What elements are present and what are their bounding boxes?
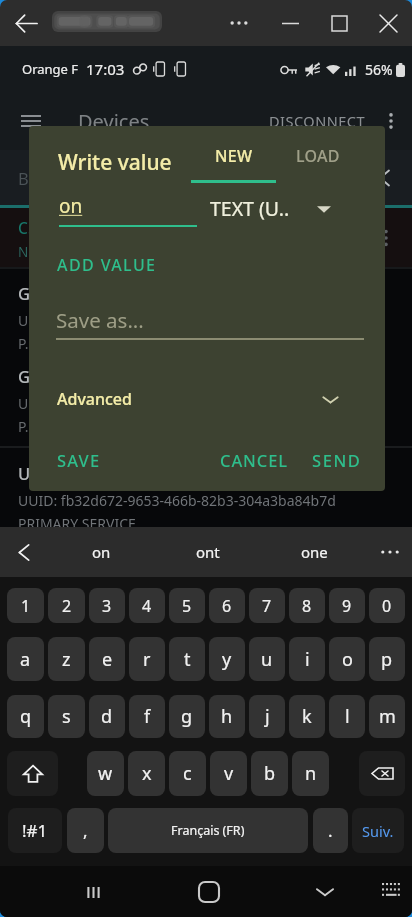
- button[interactable]: Previous suggestions: [0, 527, 48, 577]
- staticText: UUID: fb32d672-9653-466b-82b3-304a3ba84b…: [18, 491, 336, 510]
- button[interactable]: CANCEL: [220, 449, 288, 471]
- button[interactable]: s: [48, 695, 85, 738]
- staticText: 9: [342, 595, 352, 617]
- button[interactable]: f: [129, 695, 165, 738]
- staticText: .: [328, 819, 333, 842]
- button[interactable]: 9: [329, 588, 365, 623]
- button[interactable]: More options: [374, 104, 408, 138]
- button[interactable]: a: [7, 637, 44, 681]
- button[interactable]: Maximize: [317, 1, 361, 45]
- staticText: Save as...: [56, 306, 144, 334]
- button[interactable]: b: [251, 751, 288, 796]
- button[interactable]: w: [87, 751, 124, 796]
- button[interactable]: More options: [217, 1, 261, 45]
- button[interactable]: Français (FR): [108, 808, 308, 853]
- button[interactable]: Advanced: [57, 388, 132, 410]
- staticText: ont: [196, 542, 220, 562]
- staticText: d: [101, 704, 113, 729]
- staticText: C.........: [18, 217, 66, 238]
- button[interactable]: t: [169, 637, 205, 681]
- button[interactable]: G.........: [0, 352, 412, 448]
- button[interactable]: 4: [129, 588, 165, 623]
- staticText: g: [181, 704, 193, 729]
- button[interactable]: Hide keyboard: [368, 869, 412, 915]
- staticText: Write value: [58, 148, 172, 177]
- button[interactable]: c: [169, 751, 206, 796]
- button[interactable]: Close: [366, 1, 410, 45]
- button[interactable]: 6: [209, 588, 245, 623]
- button[interactable]: 7: [249, 588, 285, 623]
- staticText: U.........: [18, 311, 62, 330]
- button[interactable]: Delete: [359, 751, 405, 796]
- button[interactable]: g: [169, 695, 205, 738]
- button[interactable]: Open navigation menu: [13, 103, 49, 139]
- button[interactable]: Shift: [7, 751, 58, 796]
- button[interactable]: y: [209, 637, 245, 681]
- staticText: ADD VALUE: [57, 254, 157, 276]
- staticText: Français (FR): [171, 822, 245, 839]
- button[interactable]: Save as...: [56, 306, 364, 340]
- staticText: w: [98, 761, 113, 786]
- staticText: G.........: [18, 282, 71, 304]
- button[interactable]: r: [129, 637, 165, 681]
- button[interactable]: Recent apps: [70, 869, 116, 915]
- staticText: 3: [102, 595, 112, 617]
- button[interactable]: ,: [67, 808, 104, 853]
- button[interactable]: G.........: [0, 269, 412, 352]
- button[interactable]: 2: [48, 588, 85, 623]
- button[interactable]: v: [210, 751, 247, 796]
- button[interactable]: n: [292, 751, 329, 796]
- button[interactable]: on: [48, 527, 154, 577]
- staticText: !#1: [22, 819, 48, 842]
- button[interactable]: l: [329, 695, 365, 738]
- button[interactable]: LOAD: [278, 145, 358, 167]
- button[interactable]: k: [289, 695, 325, 738]
- staticText: P.........: [18, 417, 59, 436]
- staticText: l: [345, 704, 350, 729]
- button[interactable]: Home: [186, 869, 232, 915]
- staticText: on: [92, 542, 111, 562]
- staticText: N........: [18, 243, 58, 261]
- button[interactable]: TEXT (U..: [210, 195, 290, 222]
- button[interactable]: 0: [369, 588, 405, 623]
- button[interactable]: ADD VALUE: [57, 254, 157, 276]
- staticText: 8: [302, 595, 312, 617]
- button[interactable]: More suggestions: [368, 527, 412, 577]
- button[interactable]: on: [59, 193, 197, 227]
- button[interactable]: 8: [289, 588, 325, 623]
- staticText: i: [305, 647, 310, 672]
- button[interactable]: Back: [4, 1, 48, 45]
- button[interactable]: Minimize: [268, 1, 312, 45]
- button[interactable]: Back: [302, 869, 348, 915]
- button[interactable]: 5: [169, 588, 205, 623]
- button[interactable]: 1: [7, 588, 44, 623]
- button[interactable]: SEND: [312, 449, 362, 471]
- button[interactable]: o: [329, 637, 365, 681]
- staticText: 6: [222, 595, 232, 617]
- button[interactable]: j: [249, 695, 285, 738]
- button[interactable]: i: [289, 637, 325, 681]
- button[interactable]: x: [128, 751, 165, 796]
- button[interactable]: SAVE: [57, 449, 101, 471]
- button[interactable]: z: [48, 637, 85, 681]
- button[interactable]: B.....: [0, 150, 412, 205]
- button[interactable]: Suiv.: [352, 808, 404, 853]
- button[interactable]: e: [89, 637, 125, 681]
- button[interactable]: u: [249, 637, 285, 681]
- button[interactable]: ont: [154, 527, 261, 577]
- staticText: v: [224, 761, 234, 786]
- button[interactable]: C.........: [0, 208, 412, 267]
- button[interactable]: q: [7, 695, 44, 738]
- button[interactable]: 3: [89, 588, 125, 623]
- staticText: y: [222, 647, 232, 672]
- staticText: SAVE: [57, 449, 101, 471]
- button[interactable]: d: [89, 695, 125, 738]
- button[interactable]: NEW: [191, 145, 276, 183]
- button[interactable]: .: [313, 808, 348, 853]
- button[interactable]: one: [261, 527, 368, 577]
- button[interactable]: !#1: [8, 808, 62, 853]
- button[interactable]: p: [369, 637, 405, 681]
- staticText: t: [184, 647, 191, 672]
- button[interactable]: m: [369, 695, 405, 738]
- button[interactable]: h: [209, 695, 245, 738]
